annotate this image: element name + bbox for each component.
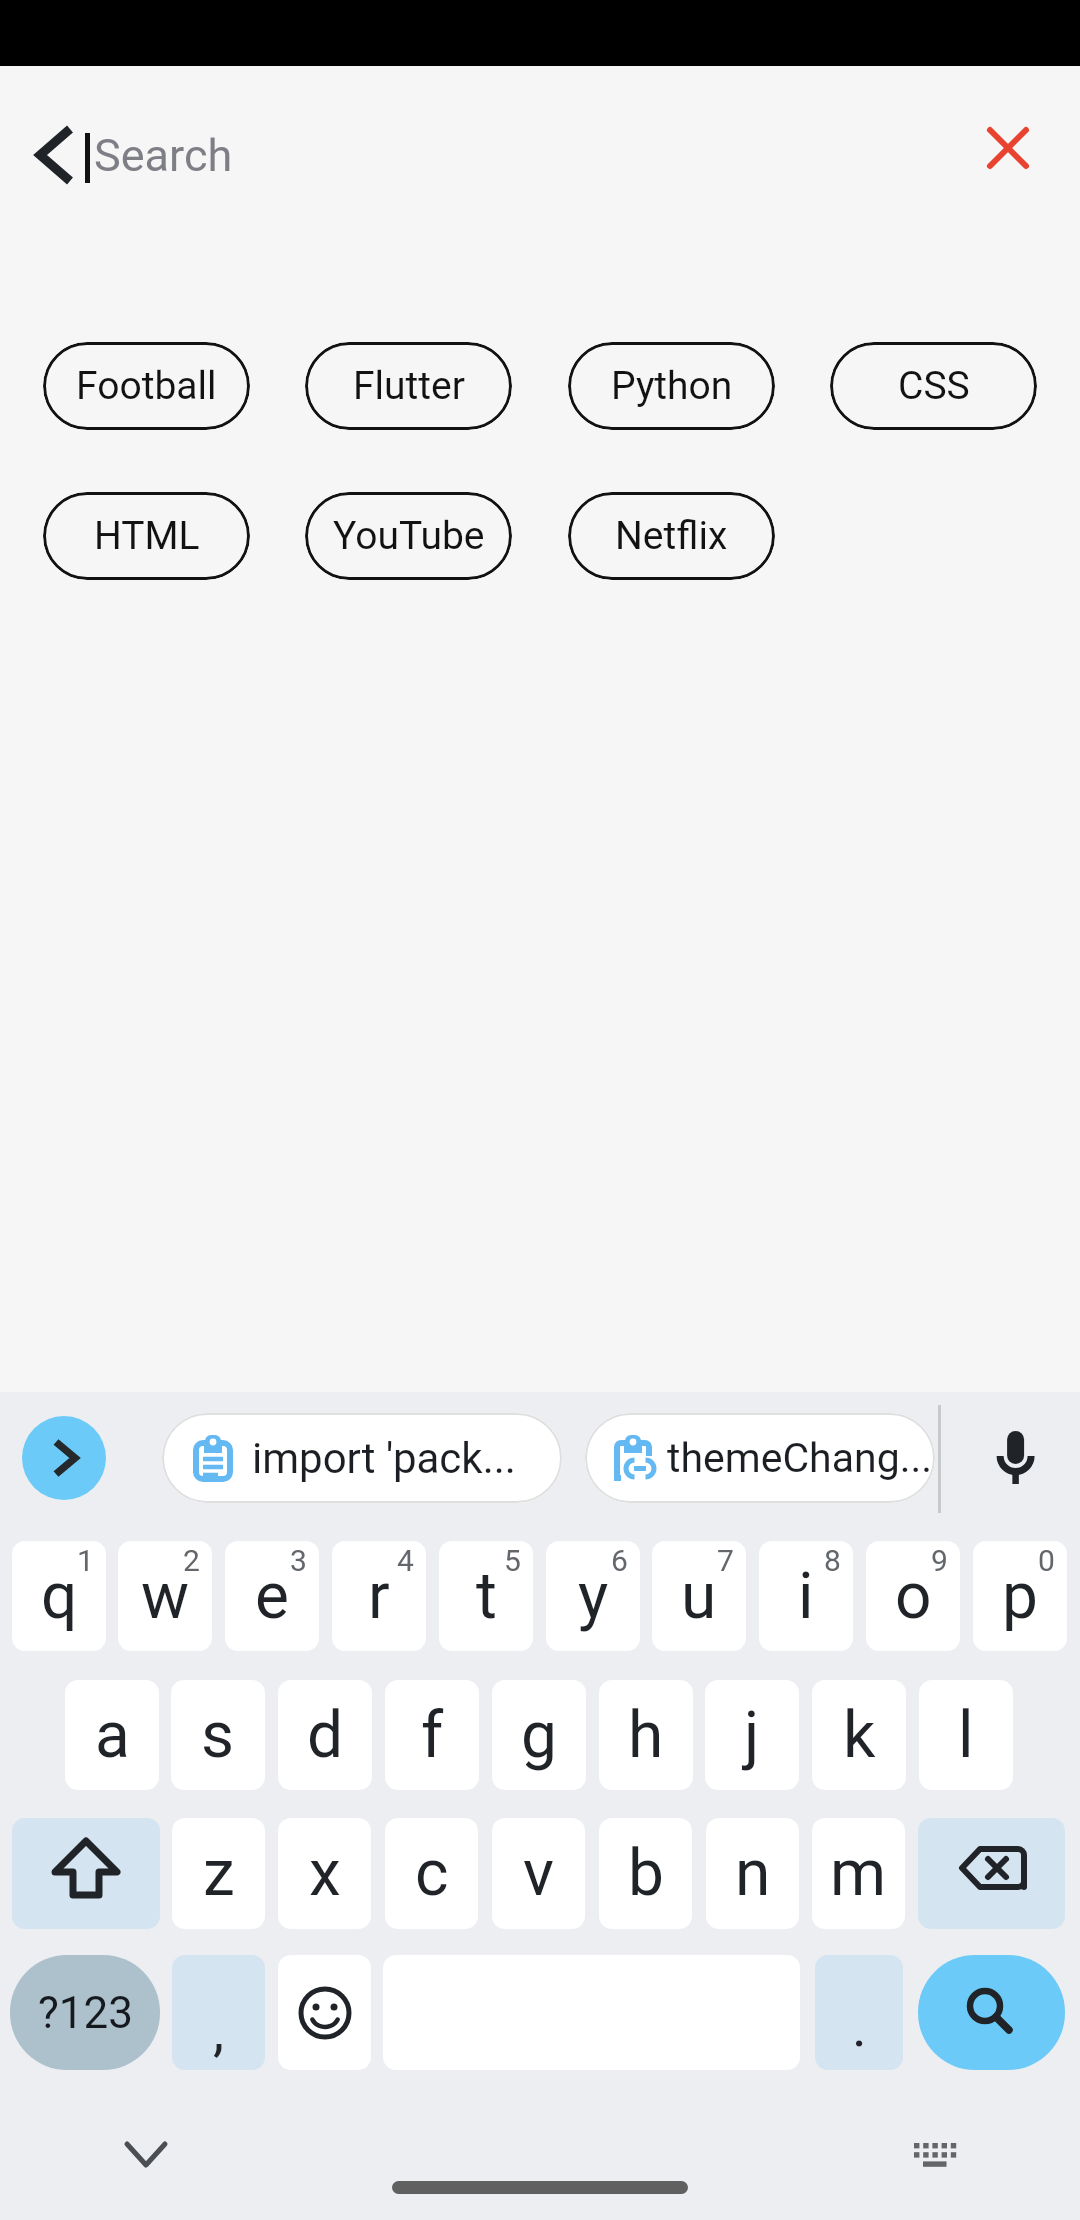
staticText: l	[958, 1698, 974, 1773]
staticText: m	[830, 1836, 887, 1911]
button[interactable]: x	[278, 1818, 371, 1929]
staticText: n	[735, 1836, 771, 1911]
staticText: d	[307, 1698, 344, 1773]
staticText: r	[368, 1559, 390, 1634]
staticText: h	[628, 1698, 664, 1773]
button[interactable]: d	[278, 1680, 372, 1790]
staticText: 0	[1038, 1543, 1055, 1578]
staticText: i	[798, 1559, 814, 1634]
staticText: YouTube	[333, 513, 485, 559]
button[interactable]: k	[812, 1680, 906, 1790]
button[interactable]: e	[225, 1541, 319, 1651]
staticText: e	[255, 1559, 289, 1634]
staticText: u	[681, 1559, 717, 1634]
button[interactable]: o	[866, 1541, 960, 1651]
staticText: themeChang...	[667, 1434, 933, 1482]
staticText: ?123	[38, 1987, 133, 2039]
button[interactable]	[984, 124, 1032, 172]
staticText: t	[476, 1559, 497, 1634]
button[interactable]: v	[492, 1818, 585, 1929]
staticText: y	[578, 1559, 609, 1634]
staticText: 9	[931, 1543, 948, 1578]
staticText: q	[41, 1559, 78, 1634]
staticText: z	[203, 1836, 235, 1911]
staticText: 3	[290, 1543, 307, 1578]
button[interactable]: c	[385, 1818, 478, 1929]
button[interactable]: ,	[172, 1955, 265, 2070]
button[interactable]: Python	[568, 342, 775, 430]
button[interactable]: u	[652, 1541, 746, 1651]
staticText: k	[843, 1698, 876, 1773]
staticText: g	[521, 1698, 557, 1773]
staticText: p	[1002, 1559, 1038, 1634]
button[interactable]: s	[171, 1680, 265, 1790]
staticText: 6	[611, 1543, 628, 1578]
staticText: o	[895, 1559, 932, 1634]
button[interactable]	[976, 1418, 1056, 1498]
staticText: 8	[824, 1543, 841, 1578]
staticText: 5	[504, 1543, 521, 1578]
staticText: Flutter	[353, 363, 465, 409]
button[interactable]: import 'pack...	[162, 1413, 562, 1503]
staticText: x	[309, 1836, 341, 1911]
staticText: .	[852, 1994, 867, 2060]
button[interactable]: Flutter	[305, 342, 512, 430]
button[interactable]: YouTube	[305, 492, 512, 580]
button[interactable]: w	[118, 1541, 212, 1651]
button[interactable]: h	[599, 1680, 693, 1790]
button[interactable]: CSS	[830, 342, 1037, 430]
button[interactable]: themeChang...	[585, 1413, 935, 1503]
button[interactable]: z	[172, 1818, 265, 1929]
button[interactable]: a	[65, 1680, 159, 1790]
staticText: w	[141, 1559, 190, 1634]
staticText: Football	[76, 363, 217, 409]
button[interactable]: j	[705, 1680, 799, 1790]
staticText: s	[201, 1698, 235, 1773]
button[interactable]: .	[815, 1955, 903, 2070]
button[interactable]: i	[759, 1541, 853, 1651]
staticText: ,	[213, 1998, 225, 2064]
button[interactable]	[12, 1818, 160, 1929]
staticText: v	[523, 1836, 554, 1911]
button[interactable]: g	[492, 1680, 586, 1790]
staticText: Python	[611, 363, 733, 409]
button[interactable]: m	[812, 1818, 905, 1929]
staticText: import 'pack...	[252, 1434, 516, 1483]
button[interactable]: Football	[43, 342, 250, 430]
button[interactable]	[918, 1955, 1065, 2070]
staticText: 1	[77, 1543, 94, 1578]
staticText: a	[95, 1698, 130, 1773]
button[interactable]	[20, 120, 90, 190]
staticText: b	[628, 1836, 664, 1911]
button[interactable]: b	[599, 1818, 692, 1929]
button[interactable]: p	[973, 1541, 1067, 1651]
button[interactable]	[278, 1955, 371, 2070]
button[interactable]	[110, 2125, 182, 2185]
button[interactable]	[918, 1818, 1065, 1929]
button[interactable]	[22, 1416, 106, 1500]
button[interactable]: q	[12, 1541, 106, 1651]
staticText: HTML	[94, 513, 200, 559]
staticText: 4	[397, 1543, 414, 1578]
staticText: 7	[717, 1543, 734, 1578]
button[interactable]: f	[385, 1680, 479, 1790]
staticText: Netflix	[615, 513, 728, 559]
staticText: 2	[183, 1543, 200, 1578]
button[interactable]: l	[919, 1680, 1013, 1790]
staticText: f	[421, 1698, 444, 1773]
button[interactable]: HTML	[43, 492, 250, 580]
button[interactable]	[904, 2133, 966, 2177]
button[interactable]: y	[546, 1541, 640, 1651]
staticText: Search	[94, 129, 233, 182]
button[interactable]: n	[706, 1818, 799, 1929]
button[interactable]: t	[439, 1541, 533, 1651]
staticText: c	[415, 1836, 449, 1911]
button[interactable]: ?123	[10, 1955, 160, 2070]
button[interactable]: Netflix	[568, 492, 775, 580]
staticText: j	[744, 1698, 760, 1773]
button[interactable]: r	[332, 1541, 426, 1651]
staticText: CSS	[898, 363, 970, 409]
